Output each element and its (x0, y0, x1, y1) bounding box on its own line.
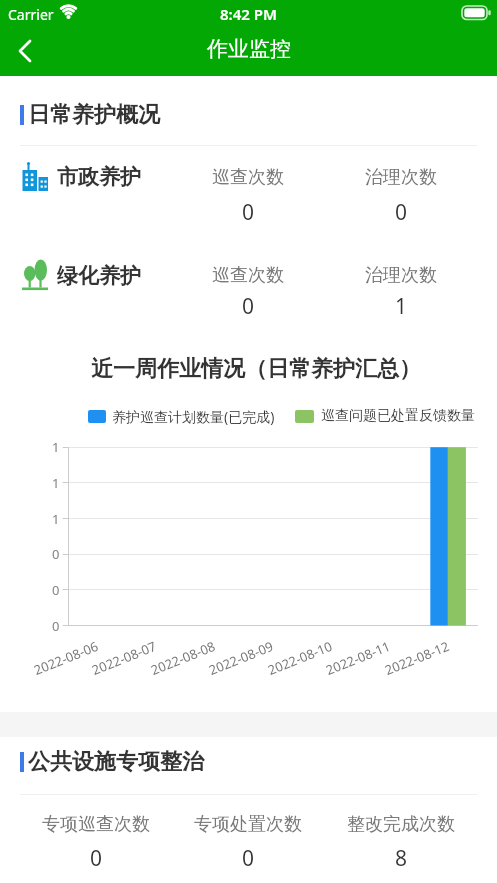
staticText: 0 (395, 198, 408, 227)
staticText: 2022-08-11 (323, 637, 393, 679)
staticText: 0 (90, 844, 103, 873)
staticText: 0 (242, 844, 255, 873)
button[interactable] (4, 32, 44, 68)
staticText: 2022-08-06 (31, 637, 101, 679)
button[interactable] (295, 410, 314, 423)
staticText: 公共设施专项整治 (28, 748, 204, 776)
staticText: 市政养护 (57, 164, 141, 190)
staticText: 1 (52, 510, 60, 528)
staticText: 0 (52, 545, 60, 563)
staticText: 2022-08-10 (265, 637, 335, 679)
staticText: 0 (242, 198, 255, 227)
staticText: 1 (395, 292, 408, 321)
staticText: 2022-08-08 (148, 637, 218, 679)
staticText: 8 (395, 844, 408, 873)
staticText: 日常养护概况 (28, 101, 160, 129)
staticText: 0 (52, 581, 60, 599)
staticText: 0 (242, 292, 255, 321)
staticText: 治理次数 (365, 166, 437, 189)
staticText: 专项处置次数 (194, 813, 302, 836)
staticText: 整改完成次数 (347, 813, 455, 836)
staticText: 巡查次数 (212, 264, 284, 287)
staticText: Carrier (8, 5, 54, 24)
staticText: 0 (52, 617, 60, 635)
staticText: 2022-08-09 (206, 637, 276, 679)
button[interactable] (0, 255, 497, 325)
staticText: 巡查次数 (212, 166, 284, 189)
staticText: 2022-08-07 (89, 637, 159, 679)
staticText: 1 (52, 438, 60, 456)
staticText: 近一周作业情况（日常养护汇总） (91, 355, 421, 381)
staticText: 2022-08-12 (382, 637, 452, 679)
staticText: 8:42 PM (220, 4, 277, 24)
button[interactable] (88, 410, 106, 423)
button[interactable] (0, 158, 497, 228)
staticText: 绿化养护 (57, 263, 141, 289)
staticText: 作业监控 (207, 36, 291, 62)
staticText: 巡查问题已处置反馈数量 (321, 407, 475, 425)
staticText: 专项巡查次数 (42, 813, 150, 836)
staticText: 1 (52, 474, 60, 492)
staticText: 养护巡查计划数量(已完成) (112, 407, 275, 426)
staticText: 治理次数 (365, 264, 437, 287)
